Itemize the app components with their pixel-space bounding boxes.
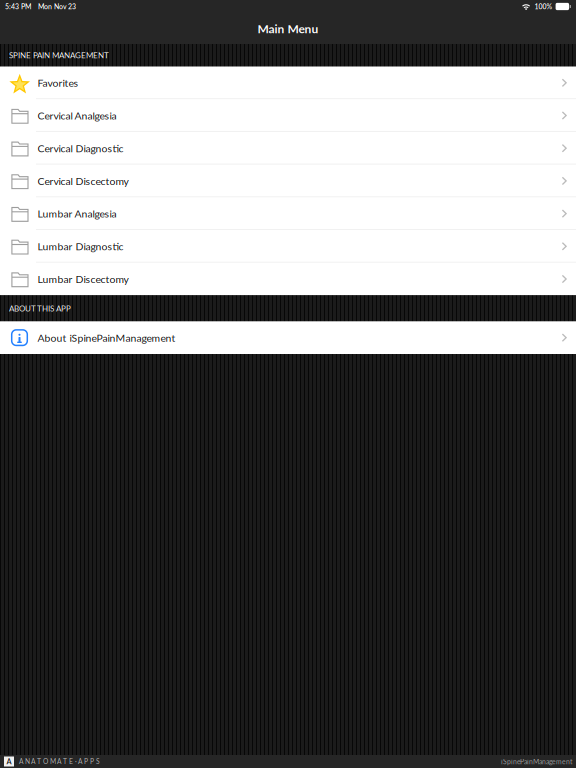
staticText: A [6, 757, 11, 766]
button[interactable]: Cervical Diagnostic [0, 132, 576, 165]
staticText: About iSpinePainManagement [37, 331, 175, 344]
staticText: A N A T O M A T E · A P P S [19, 757, 100, 765]
button[interactable]: Lumbar Discectomy [0, 263, 576, 295]
staticText: iSpinePainManagement [501, 757, 572, 766]
staticText: Main Menu [257, 21, 318, 36]
button[interactable]: Cervical Analgesia [0, 99, 576, 132]
button[interactable]: About iSpinePainManagement [0, 321, 576, 354]
staticText: Lumbar Diagnostic [37, 240, 123, 253]
staticText: 5:43 PM [5, 2, 31, 11]
button[interactable]: Favorites [0, 66, 576, 99]
button[interactable]: Lumbar Analgesia [0, 197, 576, 230]
staticText: 100% [535, 2, 553, 11]
button[interactable]: Lumbar Diagnostic [0, 230, 576, 263]
staticText: SPINE PAIN MANAGEMENT [9, 50, 109, 60]
staticText: Favorites [37, 77, 78, 89]
staticText: Mon Nov 23 [38, 2, 76, 11]
staticText: ABOUT THIS APP [9, 303, 71, 313]
staticText: Cervical Diagnostic [37, 142, 123, 154]
button[interactable]: Cervical Discectomy [0, 165, 576, 197]
staticText: Lumbar Analgesia [37, 207, 116, 220]
staticText: Cervical Analgesia [37, 109, 116, 122]
staticText: Lumbar Discectomy [37, 273, 128, 285]
staticText: Cervical Discectomy [37, 175, 128, 187]
